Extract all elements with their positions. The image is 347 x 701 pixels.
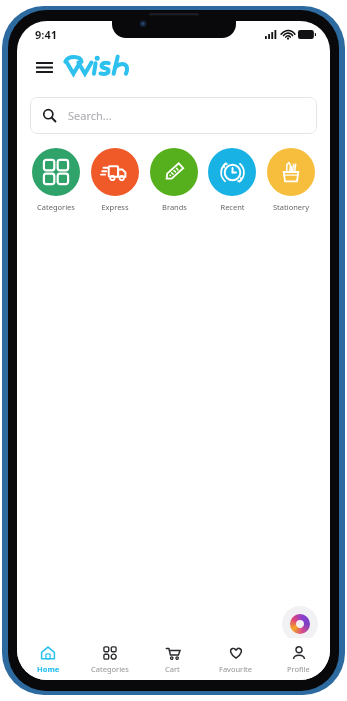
staticText: Categories	[91, 664, 129, 674]
button[interactable]: Cart	[141, 638, 204, 680]
button[interactable]: Recent	[203, 148, 261, 212]
staticText: Stationery	[273, 202, 309, 212]
staticText: Cart	[165, 664, 180, 674]
button[interactable]: Favourite	[204, 638, 267, 680]
staticText: Profile	[287, 664, 310, 674]
button[interactable]: Categories	[27, 148, 85, 212]
button[interactable]: Search...	[30, 97, 317, 134]
staticText: Favourite	[219, 664, 253, 674]
button[interactable]: Stationery	[262, 148, 320, 212]
button[interactable]: Home	[17, 638, 79, 680]
staticText: Search...	[68, 108, 112, 123]
button[interactable]: Categories	[79, 638, 141, 680]
staticText: Express	[101, 202, 129, 212]
button[interactable]: Express	[86, 148, 144, 212]
button[interactable]: Menu	[31, 54, 57, 80]
button[interactable]: Profile	[267, 638, 330, 680]
staticText: Recent	[220, 202, 245, 212]
staticText: Home	[37, 664, 60, 674]
staticText: Categories	[37, 202, 75, 212]
button[interactable]: Open assistant	[282, 606, 318, 642]
staticText: Brands	[162, 202, 187, 212]
button[interactable]: Brands	[145, 148, 203, 212]
staticText: 9:41	[35, 27, 57, 42]
